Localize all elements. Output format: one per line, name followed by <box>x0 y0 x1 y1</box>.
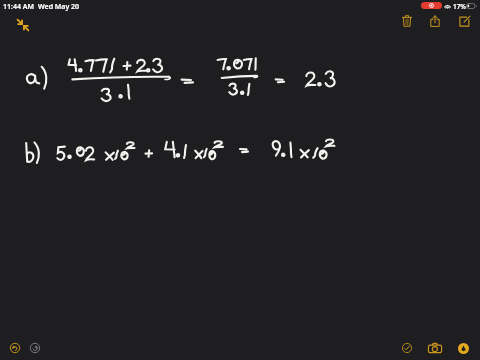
button[interactable]: Done <box>395 336 419 360</box>
button[interactable]: Exit full screen <box>12 14 34 36</box>
button[interactable]: Undo <box>3 336 27 360</box>
button[interactable]: Compose <box>452 9 476 33</box>
button[interactable]: Share <box>423 9 447 33</box>
button[interactable]: Delete <box>395 9 419 33</box>
button[interactable]: Camera <box>423 336 447 360</box>
button[interactable]: Redo <box>23 336 47 360</box>
staticText: 17% <box>453 2 466 11</box>
button[interactable]: Stop recording <box>421 2 442 9</box>
staticText: 11:44 AM <box>3 2 34 12</box>
staticText: Wed May 20 <box>38 2 80 12</box>
button[interactable]: Pen tool <box>451 336 475 360</box>
